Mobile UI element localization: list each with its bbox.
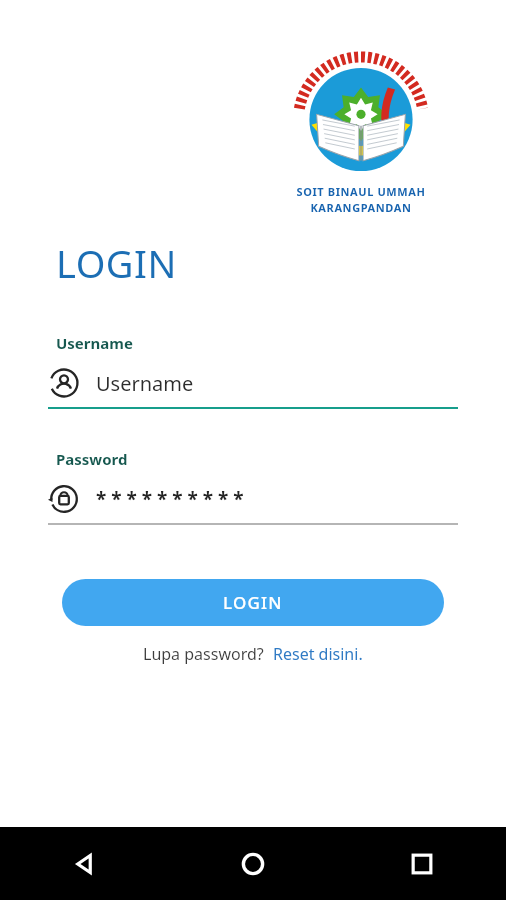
button[interactable]: Recents: [337, 827, 506, 900]
button[interactable]: Back: [0, 827, 168, 900]
button[interactable]: LOGIN: [62, 579, 444, 626]
staticText: Username: [96, 370, 194, 397]
other: Username: [48, 367, 80, 399]
staticText: SOIT BINAUL UMMAH: [296, 184, 426, 199]
other: Password: [48, 483, 80, 515]
button[interactable]: Username: [48, 333, 458, 409]
staticText: Username: [56, 333, 133, 353]
staticText: Lupa password?: [143, 643, 264, 665]
staticText: LOGIN: [56, 237, 177, 289]
staticText: * * * * * * * * * *: [96, 486, 244, 512]
staticText: LOGIN: [223, 591, 283, 614]
staticText: Password: [56, 449, 128, 469]
button[interactable]: Reset disini.: [273, 643, 363, 665]
staticText: Reset disini.: [273, 643, 363, 665]
button[interactable]: Home: [168, 827, 337, 900]
staticText: KARANGPANDAN: [310, 200, 412, 215]
button[interactable]: Password: [48, 449, 458, 525]
